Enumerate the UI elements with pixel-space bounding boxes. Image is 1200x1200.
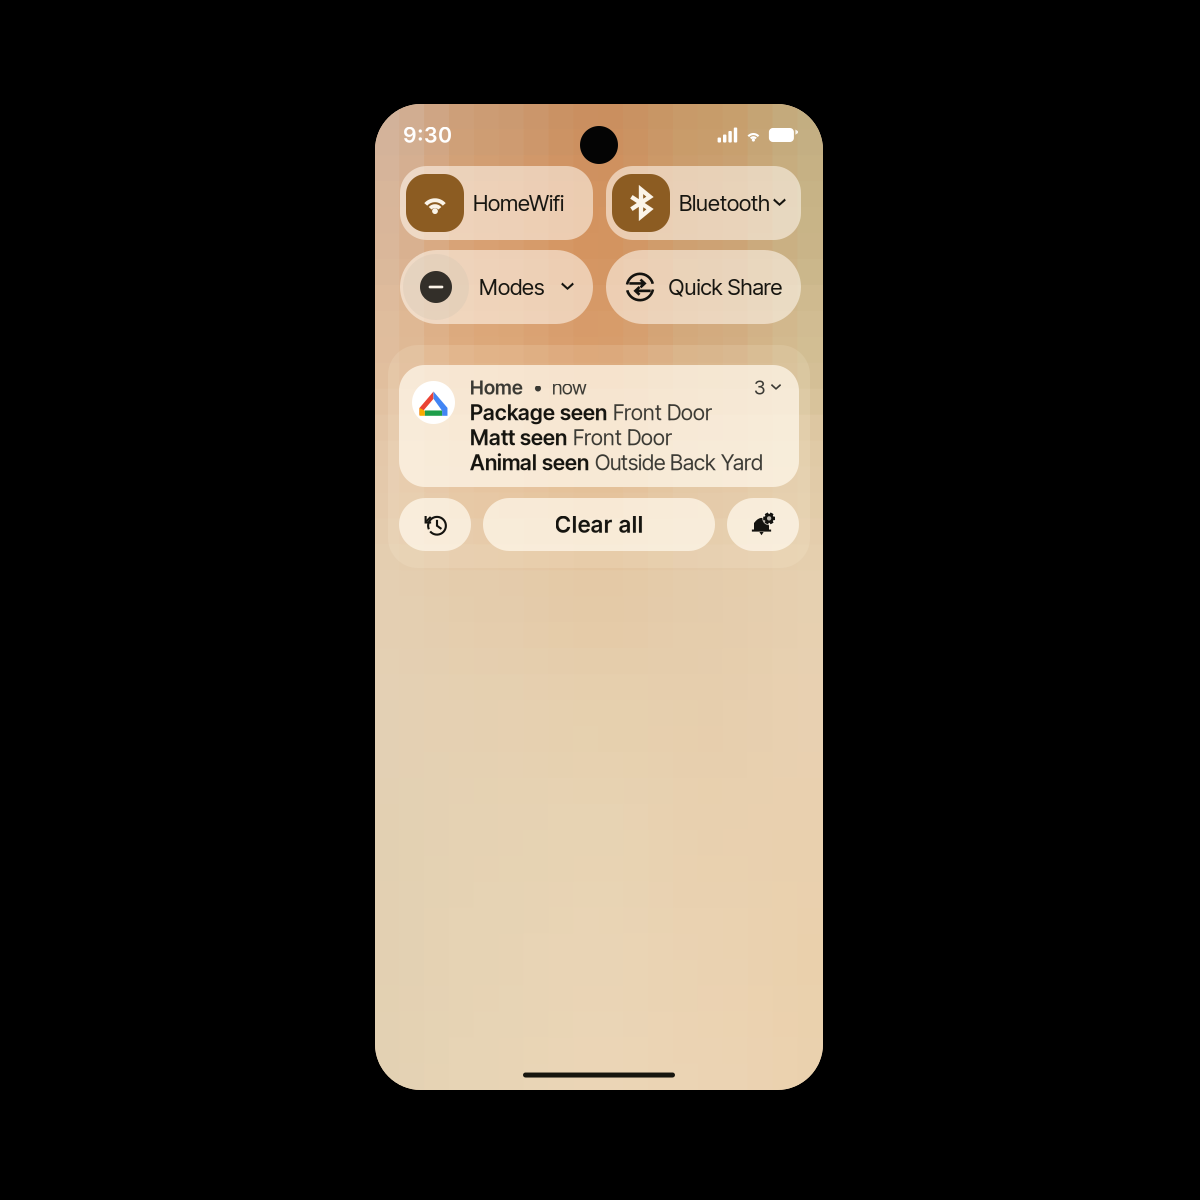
staticText: Bluetooth [679, 190, 770, 216]
staticText: now [552, 376, 587, 399]
button[interactable]: History [399, 498, 471, 551]
staticText: • [523, 376, 552, 399]
button[interactable]: Bluetooth [606, 166, 801, 240]
staticText: 9:30 [403, 122, 452, 148]
staticText: Front Door [613, 400, 712, 425]
button[interactable]: Notification settings [727, 498, 799, 551]
button[interactable]: Quick Share [606, 250, 801, 324]
button[interactable]: Modes [400, 250, 593, 324]
button[interactable]: Home [399, 365, 799, 487]
staticText: Front Door [573, 425, 672, 450]
staticText: Clear all [554, 511, 643, 538]
staticText: Home [470, 376, 523, 399]
button[interactable]: Clear all [483, 498, 715, 551]
staticText: Animal seen [470, 450, 589, 475]
button[interactable]: HomeWifi [400, 166, 593, 240]
staticText: 3 [754, 376, 765, 399]
staticText: Modes [479, 274, 544, 300]
staticText: Quick Share [668, 274, 782, 300]
staticText: Matt seen [470, 425, 567, 450]
staticText: Outside Back Yard [595, 450, 763, 475]
staticText: HomeWifi [473, 190, 564, 216]
staticText: Package seen [470, 400, 607, 425]
